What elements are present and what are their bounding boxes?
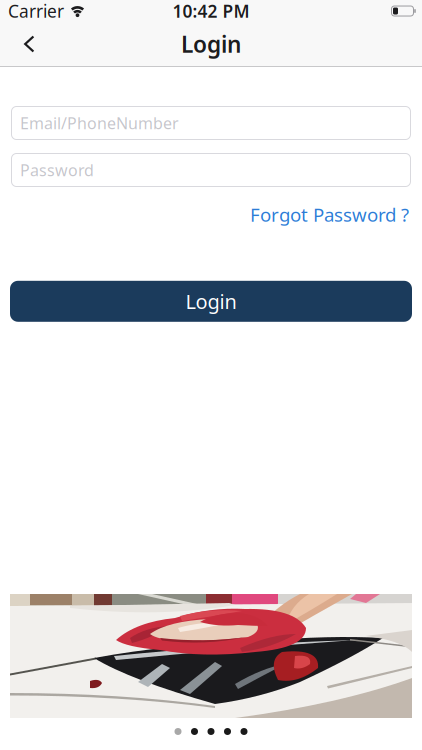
staticText: Password — [20, 159, 94, 181]
staticText: Forgot Password ? — [250, 202, 409, 227]
staticText: Login — [181, 29, 241, 59]
button[interactable]: Page 1 of 5 — [174, 728, 247, 735]
button[interactable]: Password — [11, 153, 411, 187]
staticText: Carrier — [8, 0, 64, 22]
staticText: Email/PhoneNumber — [20, 112, 179, 134]
button[interactable]: Email/PhoneNumber — [11, 106, 411, 140]
button[interactable]: Login — [10, 281, 412, 322]
staticText: 10:42 PM — [172, 0, 249, 22]
staticText: Login — [185, 288, 236, 315]
button[interactable]: Back — [0, 22, 35, 66]
button[interactable]: Forgot Password ? — [250, 202, 409, 227]
